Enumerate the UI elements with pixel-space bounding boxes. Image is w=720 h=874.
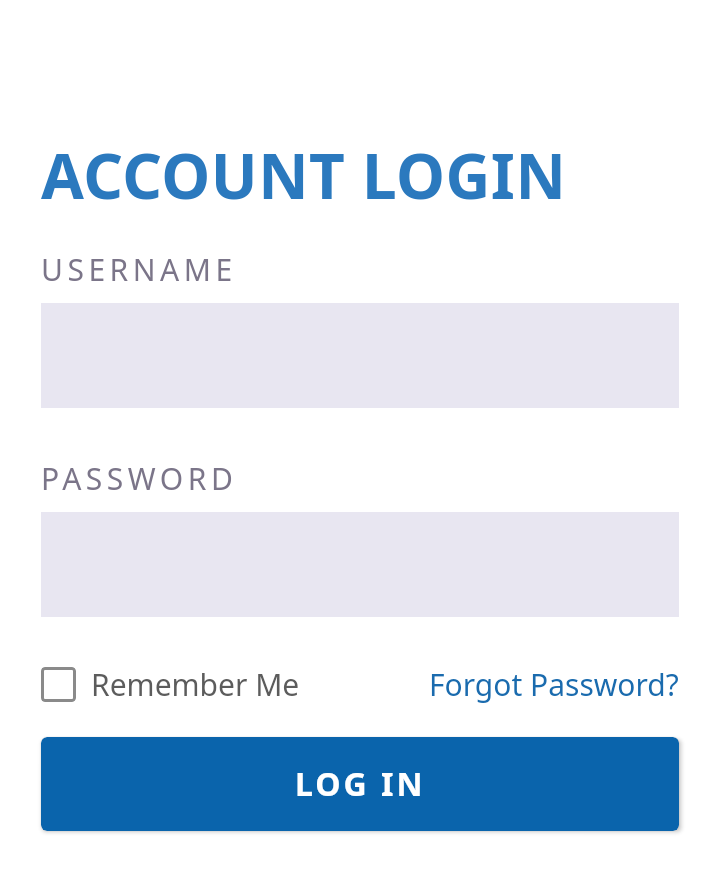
- button[interactable]: Forgot Password?: [429, 660, 679, 709]
- staticText: Remember Me: [91, 664, 300, 705]
- button[interactable]: LOG IN: [41, 737, 679, 831]
- staticText: USERNAME: [41, 249, 237, 290]
- staticText: LOG IN: [295, 762, 426, 806]
- button[interactable]: Remember Me: [41, 660, 300, 709]
- staticText: PASSWORD: [41, 458, 238, 499]
- staticText: ACCOUNT LOGIN: [41, 133, 567, 217]
